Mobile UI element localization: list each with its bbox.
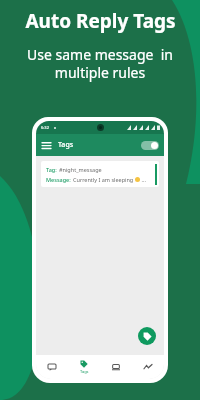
button[interactable]: Toggle [141, 141, 159, 150]
button[interactable]: Navigation item [100, 355, 132, 379]
staticText: Message: [46, 176, 73, 183]
staticText: Tags [80, 369, 89, 374]
staticText: Tag: [46, 166, 59, 173]
staticText: #night_message [59, 166, 102, 173]
button[interactable]: Menu [40, 139, 52, 151]
staticText: 6:32 [41, 125, 49, 130]
button[interactable]: Navigation item [132, 355, 164, 379]
button[interactable]: Tags [68, 355, 100, 379]
staticText: ... [140, 176, 146, 183]
button[interactable]: Add tag [138, 327, 156, 345]
staticText: Auto Reply Tags [25, 8, 176, 34]
button[interactable]: Navigation item [36, 355, 68, 379]
staticText: Use same message in multiple rules [27, 45, 173, 82]
button[interactable]: Tag: [41, 161, 159, 187]
staticText: Tags [58, 140, 74, 150]
staticText: Currently I am sleeping [73, 176, 134, 183]
